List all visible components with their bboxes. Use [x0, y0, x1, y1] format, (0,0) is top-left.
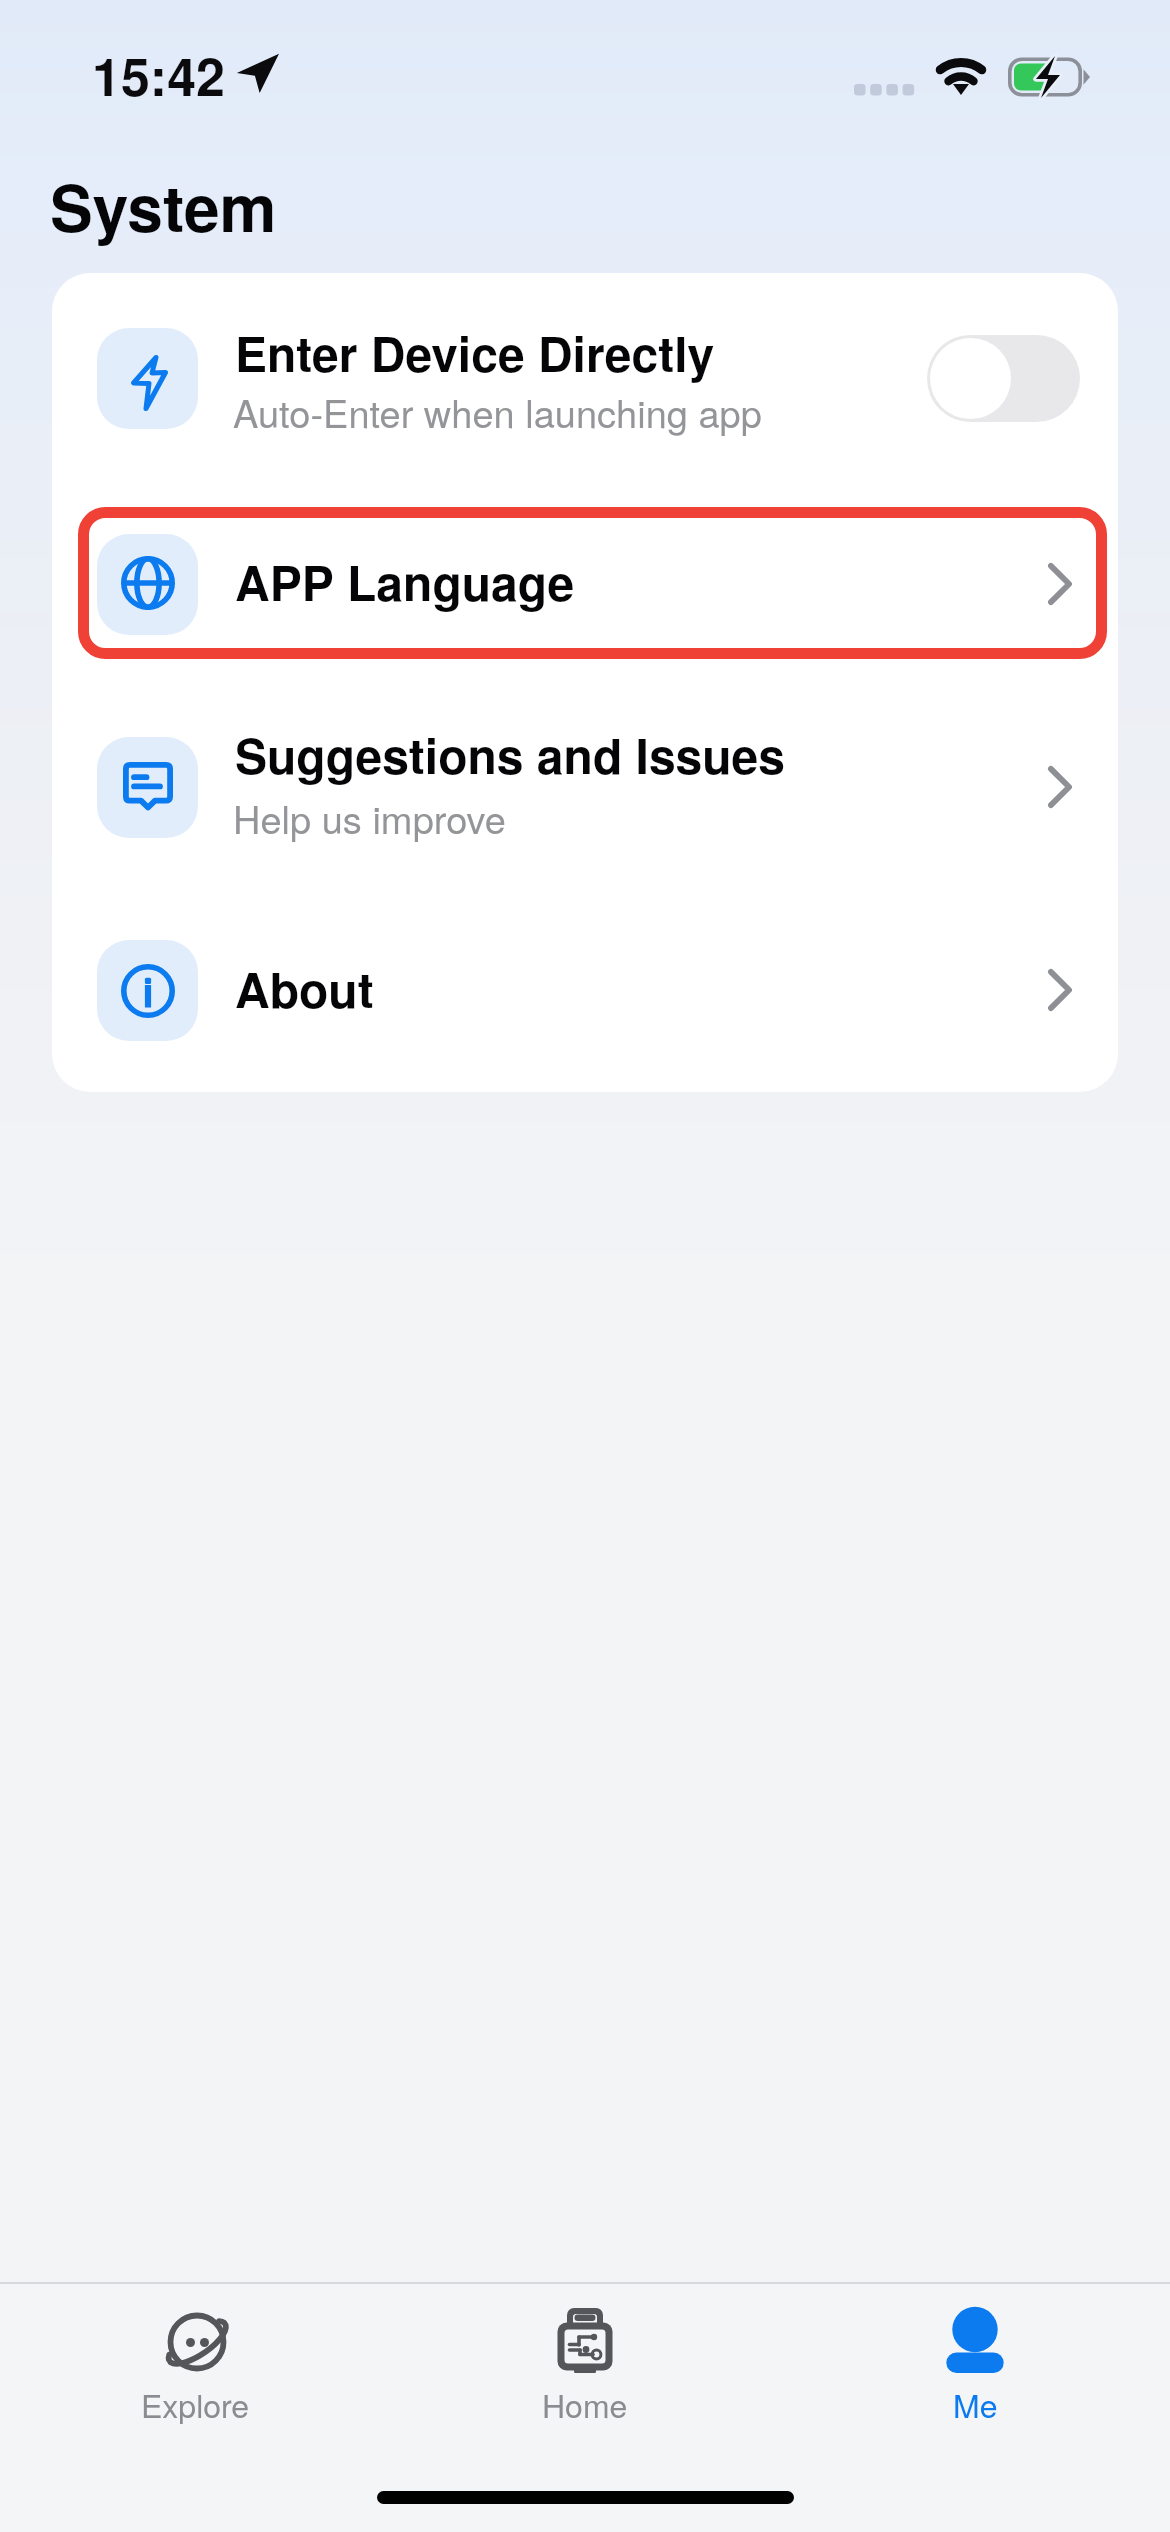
- staticText: About: [235, 954, 374, 1023]
- button[interactable]: [52, 682, 1118, 886]
- staticText: Enter Device Directly: [235, 318, 715, 387]
- button[interactable]: [52, 478, 1118, 682]
- button[interactable]: [52, 886, 1118, 1092]
- button[interactable]: Open: [1025, 752, 1095, 822]
- staticText: 15:42: [92, 37, 225, 111]
- button[interactable]: Me: [780, 2284, 1170, 2424]
- staticText: Help us improve: [233, 790, 506, 844]
- button[interactable]: [52, 273, 1118, 478]
- staticText: Auto-Enter when launching app: [233, 384, 762, 438]
- staticText: Home: [542, 2381, 628, 2424]
- button[interactable]: Home: [390, 2284, 780, 2424]
- staticText: Suggestions and Issues: [235, 720, 785, 789]
- staticText: System: [50, 160, 277, 252]
- button[interactable]: Enter Device Directly toggle: [927, 335, 1080, 422]
- button[interactable]: Explore: [0, 2284, 390, 2424]
- staticText: APP Language: [235, 547, 575, 616]
- staticText: Me: [953, 2381, 998, 2424]
- staticText: Explore: [141, 2381, 250, 2424]
- button[interactable]: Open: [1025, 955, 1095, 1025]
- button[interactable]: Open: [1025, 549, 1095, 619]
